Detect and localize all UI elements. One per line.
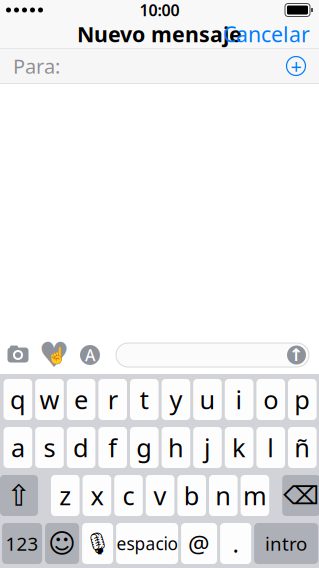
button[interactable]: z — [51, 475, 80, 516]
button[interactable]: j — [193, 427, 222, 468]
staticText: @ — [188, 528, 210, 559]
button[interactable]: q — [4, 379, 32, 420]
button[interactable]: Cámara — [0, 340, 36, 370]
staticText: q — [10, 383, 26, 416]
button[interactable]: e — [67, 379, 95, 420]
staticText: r — [108, 383, 118, 416]
button[interactable]: ñ — [288, 427, 317, 468]
button[interactable]: . — [220, 523, 251, 564]
staticText: A — [85, 344, 95, 366]
staticText: + — [290, 53, 301, 79]
staticText: 🎙 — [84, 531, 111, 556]
staticText: y — [169, 383, 182, 416]
staticText: ☺ — [48, 528, 76, 559]
staticText: Cancelar — [223, 20, 310, 48]
button[interactable]: Apps — [72, 340, 108, 370]
staticText: g — [136, 431, 152, 464]
button[interactable]: Cancelar — [223, 14, 319, 54]
staticText: t — [140, 383, 149, 416]
staticText: z — [59, 479, 71, 512]
staticText: k — [232, 431, 246, 464]
staticText: p — [294, 383, 310, 416]
button[interactable]: v — [146, 475, 174, 516]
button[interactable]: t — [130, 379, 159, 420]
button[interactable]: l — [256, 427, 285, 468]
staticText: ñ — [294, 431, 310, 464]
button[interactable]: n — [209, 475, 238, 516]
button[interactable]: w — [35, 379, 64, 420]
button[interactable]: Añadir contacto — [279, 49, 313, 83]
staticText: c — [122, 479, 134, 512]
button[interactable]: Emoji — [45, 523, 79, 564]
staticText: espacio — [117, 532, 178, 555]
button[interactable]: Digital Touch — [36, 340, 72, 370]
staticText: l — [267, 431, 274, 464]
staticText: h — [168, 431, 184, 464]
button[interactable]: r — [98, 379, 127, 420]
staticText: e — [74, 383, 88, 416]
staticText: 10:00 — [139, 0, 179, 21]
staticText: v — [154, 479, 167, 512]
button[interactable]: h — [162, 427, 190, 468]
button[interactable]: o — [256, 379, 285, 420]
staticText: s — [43, 431, 55, 464]
button[interactable]: b — [177, 475, 206, 516]
staticText: j — [204, 431, 211, 464]
button[interactable]: y — [162, 379, 190, 420]
staticText: o — [263, 383, 278, 416]
staticText: ♥ — [38, 335, 69, 375]
button[interactable]: i — [225, 379, 253, 420]
staticText: 123 — [6, 531, 39, 556]
staticText: m — [243, 479, 267, 512]
staticText: ⇧ — [6, 479, 31, 512]
button[interactable]: Borrar — [282, 475, 319, 516]
button[interactable]: Dictado — [82, 523, 113, 564]
staticText: intro — [265, 531, 307, 556]
staticText: ☝ — [46, 346, 66, 365]
button[interactable]: x — [83, 475, 111, 516]
button[interactable]: p — [288, 379, 317, 420]
staticText: b — [184, 479, 200, 512]
button[interactable]: d — [67, 427, 95, 468]
staticText: a — [11, 431, 25, 464]
button[interactable]: g — [130, 427, 159, 468]
staticText: Para: — [13, 53, 60, 79]
button[interactable]: a — [4, 427, 32, 468]
button[interactable]: Mayúsculas — [0, 475, 38, 516]
button[interactable]: c — [114, 475, 143, 516]
staticText: ⌫ — [283, 481, 319, 510]
button[interactable]: f — [98, 427, 127, 468]
button[interactable]: espacio — [116, 523, 178, 564]
button[interactable]: Campo de mensaje — [116, 340, 309, 370]
button[interactable]: m — [241, 475, 269, 516]
staticText: w — [39, 383, 59, 416]
staticText: . — [233, 528, 239, 559]
button[interactable]: intro — [254, 523, 318, 564]
button[interactable]: @ — [181, 523, 217, 564]
staticText: x — [90, 479, 103, 512]
staticText: Nuevo mensaje — [77, 20, 242, 48]
button[interactable]: u — [193, 379, 222, 420]
button[interactable]: 123 — [2, 523, 42, 564]
staticText: n — [215, 479, 231, 512]
staticText: u — [199, 383, 215, 416]
button[interactable]: s — [35, 427, 64, 468]
staticText: i — [236, 383, 243, 416]
staticText: d — [73, 431, 89, 464]
button[interactable]: k — [225, 427, 253, 468]
staticText: f — [108, 431, 117, 464]
staticText: ↑ — [289, 345, 304, 365]
